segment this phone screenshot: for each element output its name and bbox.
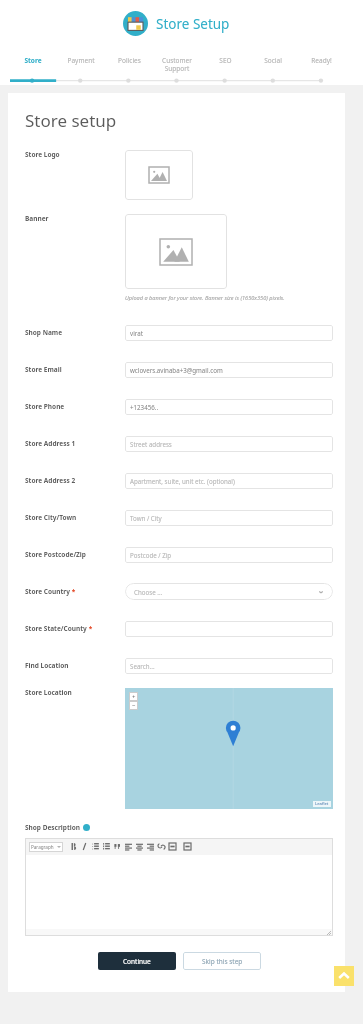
staticText: Store State/County <box>25 624 87 633</box>
staticText: Policies <box>118 56 141 65</box>
staticText: Choose ... <box>134 588 163 596</box>
button[interactable]: Align right <box>145 841 156 852</box>
staticText: * <box>87 624 93 633</box>
button[interactable]: Policies <box>105 47 153 85</box>
staticText: Shop Name <box>25 328 63 337</box>
staticText: Street address <box>130 440 172 448</box>
staticText: Store City/Town <box>25 513 77 522</box>
staticText: Postcode / Zip <box>130 551 172 559</box>
button[interactable]: Store location map <box>125 688 333 809</box>
button[interactable] <box>125 621 333 637</box>
button[interactable]: Scroll to top <box>334 966 354 986</box>
button[interactable]: Numbered list <box>101 841 112 852</box>
staticText: Payment <box>67 56 95 65</box>
button[interactable]: Zoom out <box>129 701 138 710</box>
staticText: Social <box>264 56 282 65</box>
staticText: + <box>132 693 136 701</box>
staticText: Skip this step <box>202 957 243 966</box>
button[interactable]: Help <box>83 824 90 831</box>
button[interactable]: Upload banner <box>125 214 227 289</box>
button[interactable]: wclovers.avinaba+3@gmail.com <box>125 362 333 378</box>
staticText: Continue <box>123 957 151 966</box>
staticText: Apartment, suite, unit etc. (optional) <box>130 477 235 485</box>
staticText: Paragraph <box>31 844 54 850</box>
staticText: Find Location <box>25 661 69 670</box>
button[interactable]: Bulleted list <box>90 841 101 852</box>
button[interactable]: virat <box>125 325 333 341</box>
button[interactable]: Link <box>156 841 167 852</box>
button[interactable]: Town / City <box>125 510 333 526</box>
staticText: Shop Description <box>25 823 80 832</box>
button[interactable]: SEO <box>201 47 249 85</box>
staticText: Store Address 2 <box>25 476 76 485</box>
staticText: Store Phone <box>25 402 65 411</box>
button[interactable]: Quote <box>112 841 123 852</box>
staticText: wclovers.avinaba+3@gmail.com <box>130 366 223 374</box>
staticText: Search... <box>130 662 155 670</box>
button[interactable]: Continue <box>98 952 176 970</box>
button[interactable]: Italic <box>79 841 90 852</box>
button[interactable]: Align left <box>123 841 134 852</box>
button[interactable]: B <box>68 841 79 852</box>
button[interactable]: Payment <box>57 47 105 85</box>
staticText: Ready! <box>311 56 332 65</box>
button[interactable]: Skip this step <box>183 952 261 970</box>
button[interactable]: Customer Support <box>153 47 201 85</box>
button[interactable]: Social <box>249 47 297 85</box>
staticText: Store Country <box>25 587 70 596</box>
button[interactable]: +123456.. <box>125 399 333 415</box>
staticText: virat <box>130 329 143 337</box>
staticText: − <box>132 702 136 710</box>
button[interactable]: Apartment, suite, unit etc. (optional) <box>125 473 333 489</box>
staticText: Store <box>24 56 42 65</box>
button[interactable]: Street address <box>125 436 333 452</box>
button[interactable]: Read more <box>167 841 178 852</box>
button[interactable]: Upload store logo <box>125 150 193 200</box>
button[interactable]: Paragraph <box>29 842 63 852</box>
staticText: Store Logo <box>25 150 60 159</box>
staticText: Leaflet <box>315 801 329 807</box>
staticText: Store Location <box>25 688 72 697</box>
staticText: Store Postcode/Zip <box>25 550 86 559</box>
button[interactable]: Ready! <box>297 47 345 85</box>
staticText: Store Address 1 <box>25 439 76 448</box>
staticText: Store Email <box>25 365 62 374</box>
staticText: * <box>70 587 76 596</box>
staticText: Banner <box>25 214 49 223</box>
button[interactable]: Toolbar toggle <box>182 841 193 852</box>
staticText: +123456.. <box>130 403 159 411</box>
staticText: SEO <box>219 56 232 65</box>
staticText: Store setup <box>25 109 117 132</box>
staticText: Town / City <box>130 514 162 522</box>
button[interactable]: Choose ... <box>125 583 333 600</box>
staticText: Upload a banner for your store. Banner s… <box>125 294 285 302</box>
button[interactable]: Store <box>8 47 57 85</box>
button[interactable]: Align center <box>134 841 145 852</box>
button[interactable]: Postcode / Zip <box>125 547 333 563</box>
button[interactable]: Search... <box>125 658 333 674</box>
staticText: Store Setup <box>156 15 230 33</box>
staticText: Customer Support <box>162 56 192 73</box>
button[interactable]: Zoom in <box>129 692 138 701</box>
